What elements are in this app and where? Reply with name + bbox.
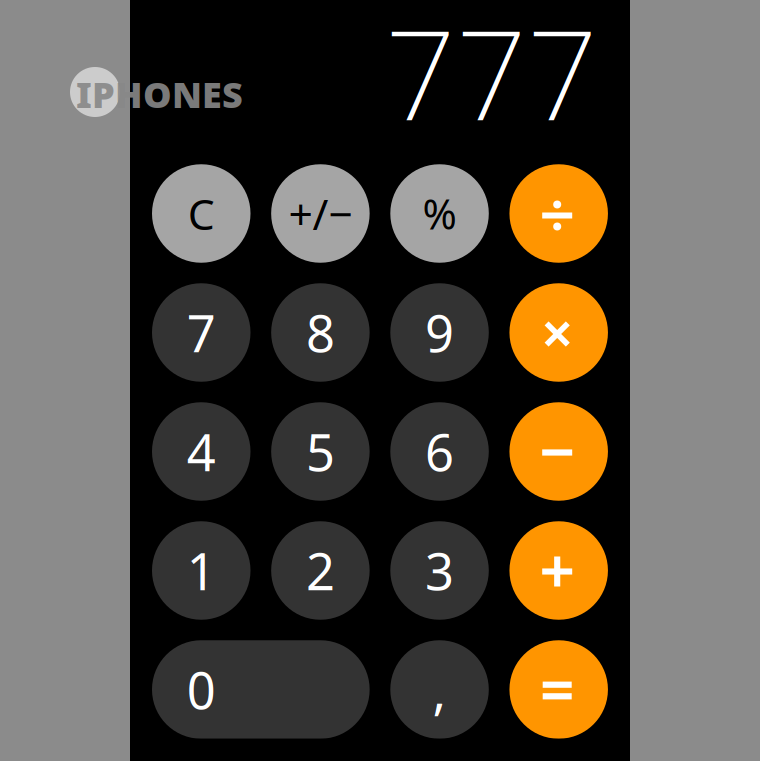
button[interactable]: 4 <box>152 402 250 501</box>
button[interactable]: 6 <box>390 402 489 501</box>
button[interactable]: , <box>390 640 489 739</box>
staticText: 6 <box>425 418 454 485</box>
button[interactable]: Divide <box>509 164 608 263</box>
staticText: 3 <box>425 537 454 604</box>
button[interactable]: C <box>152 164 250 263</box>
staticText: , <box>433 656 447 723</box>
staticText: 0 <box>187 656 216 723</box>
button[interactable]: 5 <box>271 402 370 501</box>
staticText: 9 <box>425 299 454 366</box>
button[interactable]: % <box>390 164 489 263</box>
staticText: IPHONES <box>76 70 243 118</box>
staticText: 7 <box>187 299 216 366</box>
button[interactable]: Multiply <box>509 283 608 382</box>
button[interactable]: 3 <box>390 521 489 620</box>
button[interactable]: 9 <box>390 283 489 382</box>
staticText: +/− <box>288 185 352 242</box>
button[interactable]: Subtract <box>509 402 608 501</box>
button[interactable]: Add <box>509 521 608 620</box>
button[interactable]: +/− <box>271 164 370 263</box>
button[interactable]: 1 <box>152 521 250 620</box>
staticText: 777 <box>385 0 598 155</box>
staticText: 1 <box>187 537 216 604</box>
button[interactable]: 2 <box>271 521 370 620</box>
staticText: 8 <box>306 299 335 366</box>
button[interactable]: 7 <box>152 283 250 382</box>
button[interactable]: Equals <box>509 640 608 739</box>
staticText: C <box>188 185 215 242</box>
staticText: 5 <box>306 418 335 485</box>
staticText: % <box>423 186 457 241</box>
staticText: 4 <box>187 418 216 485</box>
staticText: 2 <box>306 537 335 604</box>
button[interactable]: 8 <box>271 283 370 382</box>
button[interactable]: 0 <box>152 640 370 739</box>
